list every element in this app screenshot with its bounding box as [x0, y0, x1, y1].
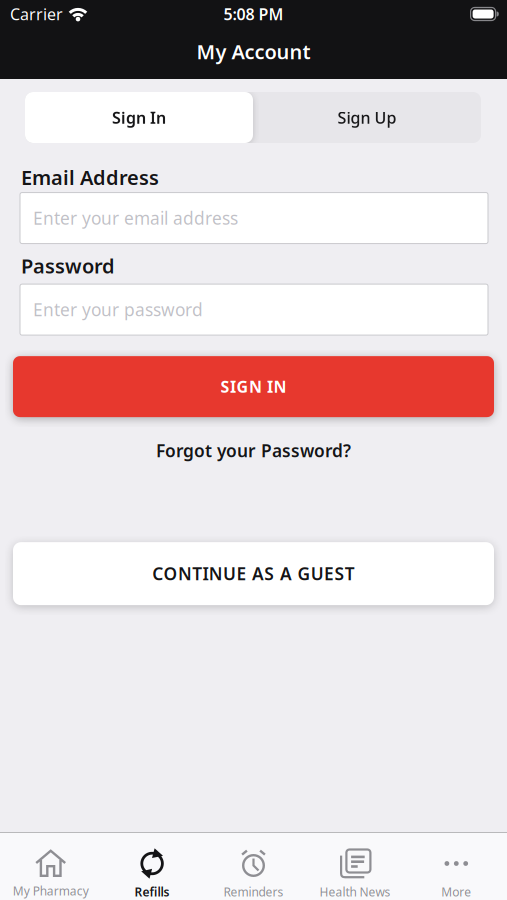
staticText: Refills [135, 884, 170, 900]
staticText: Sign Up [337, 107, 396, 128]
button[interactable]: Enter your email address [20, 193, 488, 244]
button[interactable]: Forgot your Password? [0, 439, 507, 462]
button[interactable]: Enter your password [20, 284, 488, 335]
button[interactable]: SIGN IN [13, 356, 494, 417]
button[interactable]: Sign Up [253, 92, 481, 143]
staticText: Forgot your Password? [156, 439, 351, 462]
staticText: My Account [196, 38, 310, 65]
staticText: Email Address [21, 164, 159, 191]
staticText: My Pharmacy [13, 883, 89, 899]
staticText: Enter your email address [33, 207, 238, 230]
staticText: 5:08 PM [223, 3, 283, 25]
button[interactable]: Refills [101, 833, 203, 900]
staticText: More [441, 884, 471, 900]
staticText: Enter your password [33, 298, 203, 321]
button[interactable]: CONTINUE AS A GUEST [13, 542, 494, 605]
staticText: Reminders [223, 884, 283, 900]
button[interactable]: My Pharmacy [0, 834, 101, 899]
staticText: CONTINUE AS A GUEST [152, 562, 355, 585]
staticText: Carrier [10, 3, 63, 25]
button[interactable]: Sign In [25, 92, 253, 143]
button[interactable]: Health News [304, 833, 406, 900]
staticText: Health News [319, 884, 390, 900]
button[interactable]: Reminders [203, 833, 304, 900]
button[interactable]: More [406, 833, 507, 900]
staticText: Sign In [112, 107, 166, 128]
staticText: SIGN IN [220, 376, 286, 397]
staticText: Password [21, 253, 115, 279]
